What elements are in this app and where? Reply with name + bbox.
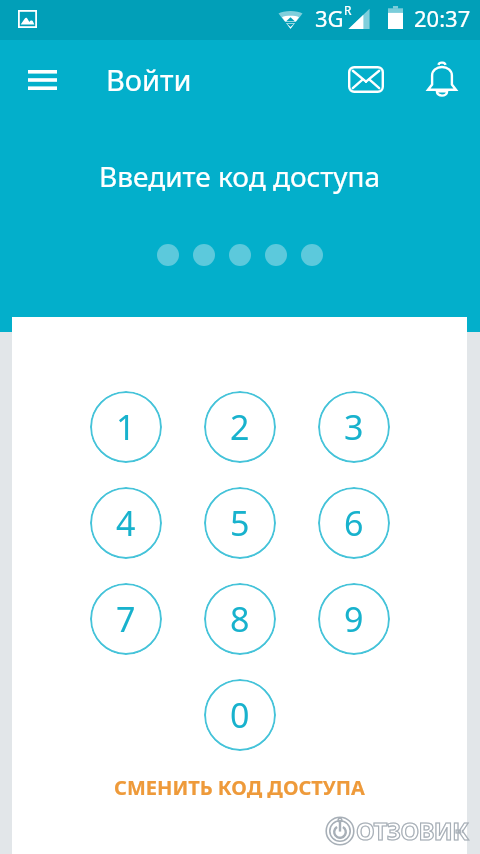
button[interactable]: СМЕНИТЬ КОД ДОСТУПА xyxy=(98,768,381,807)
button[interactable]: 1 xyxy=(90,391,162,463)
staticText: 3 xyxy=(344,404,364,450)
staticText: 4 xyxy=(116,500,136,546)
button[interactable]: 3 xyxy=(318,391,390,463)
staticText: 1 xyxy=(116,404,136,450)
button[interactable]: 2 xyxy=(204,391,276,463)
button[interactable]: 9 xyxy=(318,583,390,655)
button[interactable]: 7 xyxy=(90,583,162,655)
staticText: 8 xyxy=(230,596,250,642)
staticText: 20:37 xyxy=(414,3,471,33)
button[interactable]: 4 xyxy=(90,487,162,559)
staticText: ОТЗОВИК xyxy=(356,814,469,847)
staticText: 2 xyxy=(230,404,250,450)
staticText: 9 xyxy=(344,596,364,642)
staticText: 0 xyxy=(230,692,250,738)
staticText: СМЕНИТЬ КОД ДОСТУПА xyxy=(114,774,365,801)
staticText: 6 xyxy=(344,500,364,546)
button[interactable]: 6 xyxy=(318,487,390,559)
button[interactable]: Menu xyxy=(12,50,72,110)
staticText: 3G xyxy=(315,3,344,33)
staticText: 5 xyxy=(230,500,250,546)
button[interactable]: 0 xyxy=(204,679,276,751)
button[interactable]: 8 xyxy=(204,583,276,655)
staticText: 7 xyxy=(116,596,136,642)
button[interactable]: Notifications xyxy=(418,55,466,103)
staticText: Введите код доступа xyxy=(99,157,381,195)
button[interactable]: 5 xyxy=(204,487,276,559)
button[interactable]: Messages xyxy=(342,55,390,103)
staticText: R xyxy=(344,2,352,18)
staticText: Войти xyxy=(106,60,192,99)
